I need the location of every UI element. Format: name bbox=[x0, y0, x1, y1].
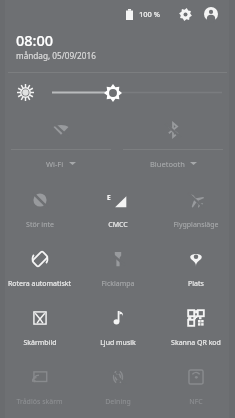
staticText: Delning bbox=[105, 397, 131, 407]
button[interactable]: Wi-Fi bbox=[5, 111, 117, 177]
button[interactable]: Ficklampa bbox=[79, 236, 157, 295]
button[interactable]: E bbox=[79, 177, 157, 236]
staticText: Plats bbox=[188, 279, 204, 289]
staticText: 08:00 bbox=[16, 30, 54, 50]
button[interactable]: Trådlös skärm bbox=[0, 354, 79, 413]
staticText: CMCC bbox=[108, 220, 128, 230]
staticText: måndag, 05/09/2016 bbox=[16, 50, 96, 61]
button[interactable]: Brightness bbox=[0, 73, 235, 111]
button[interactable]: Flygplansläge bbox=[157, 177, 235, 236]
staticText: Stör inte bbox=[26, 220, 54, 230]
button[interactable]: Plats bbox=[157, 236, 235, 295]
button[interactable]: Settings bbox=[174, 3, 196, 25]
staticText: Wi-Fi bbox=[46, 159, 64, 169]
button[interactable]: Delning bbox=[79, 354, 157, 413]
staticText: 100 % bbox=[139, 9, 161, 19]
staticText: Skärmbild bbox=[23, 338, 57, 348]
button[interactable]: Bluetooth bbox=[117, 111, 229, 177]
staticText: Ljud musik bbox=[100, 338, 136, 348]
button[interactable]: Stör inte bbox=[0, 177, 79, 236]
staticText: Bluetooth bbox=[150, 159, 185, 169]
staticText: E bbox=[107, 193, 111, 202]
staticText: Flygplansläge bbox=[173, 220, 219, 230]
button[interactable]: Skanna QR kod bbox=[157, 295, 235, 354]
staticText: Trådlös skärm bbox=[16, 397, 63, 407]
staticText: NFC bbox=[189, 397, 203, 407]
staticText: Skanna QR kod bbox=[171, 338, 221, 348]
button[interactable]: User account bbox=[200, 3, 222, 25]
button[interactable]: Ljud musik bbox=[79, 295, 157, 354]
staticText: Ficklampa bbox=[101, 279, 135, 289]
button[interactable]: Skärmbild bbox=[0, 295, 79, 354]
button[interactable]: Rotera automatiskt bbox=[0, 236, 79, 295]
button[interactable]: NFC bbox=[157, 354, 235, 413]
staticText: Rotera automatiskt bbox=[8, 279, 71, 289]
